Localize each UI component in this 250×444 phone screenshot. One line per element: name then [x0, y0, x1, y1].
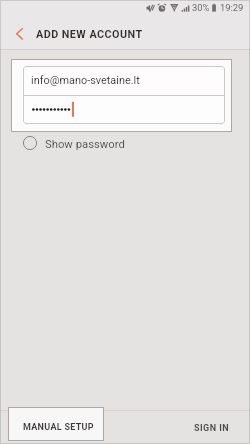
staticText: SIGN IN — [194, 423, 230, 434]
staticText: MANUAL SETUP — [23, 422, 94, 433]
button[interactable]: SIGN IN — [171, 411, 250, 442]
staticText: 30% — [192, 2, 210, 13]
button[interactable]: MANUAL SETUP — [8, 407, 104, 441]
staticText: Show password — [45, 138, 125, 151]
button[interactable]: Show password — [18, 132, 112, 154]
staticText: info@mano-svetaine.lt — [31, 74, 140, 87]
button[interactable]: Back — [7, 16, 31, 49]
button[interactable]: info@mano-svetaine.lt — [23, 66, 225, 95]
staticText: ADD NEW ACCOUNT — [36, 28, 143, 41]
staticText: 19:29 — [220, 2, 244, 13]
button[interactable] — [23, 95, 225, 124]
